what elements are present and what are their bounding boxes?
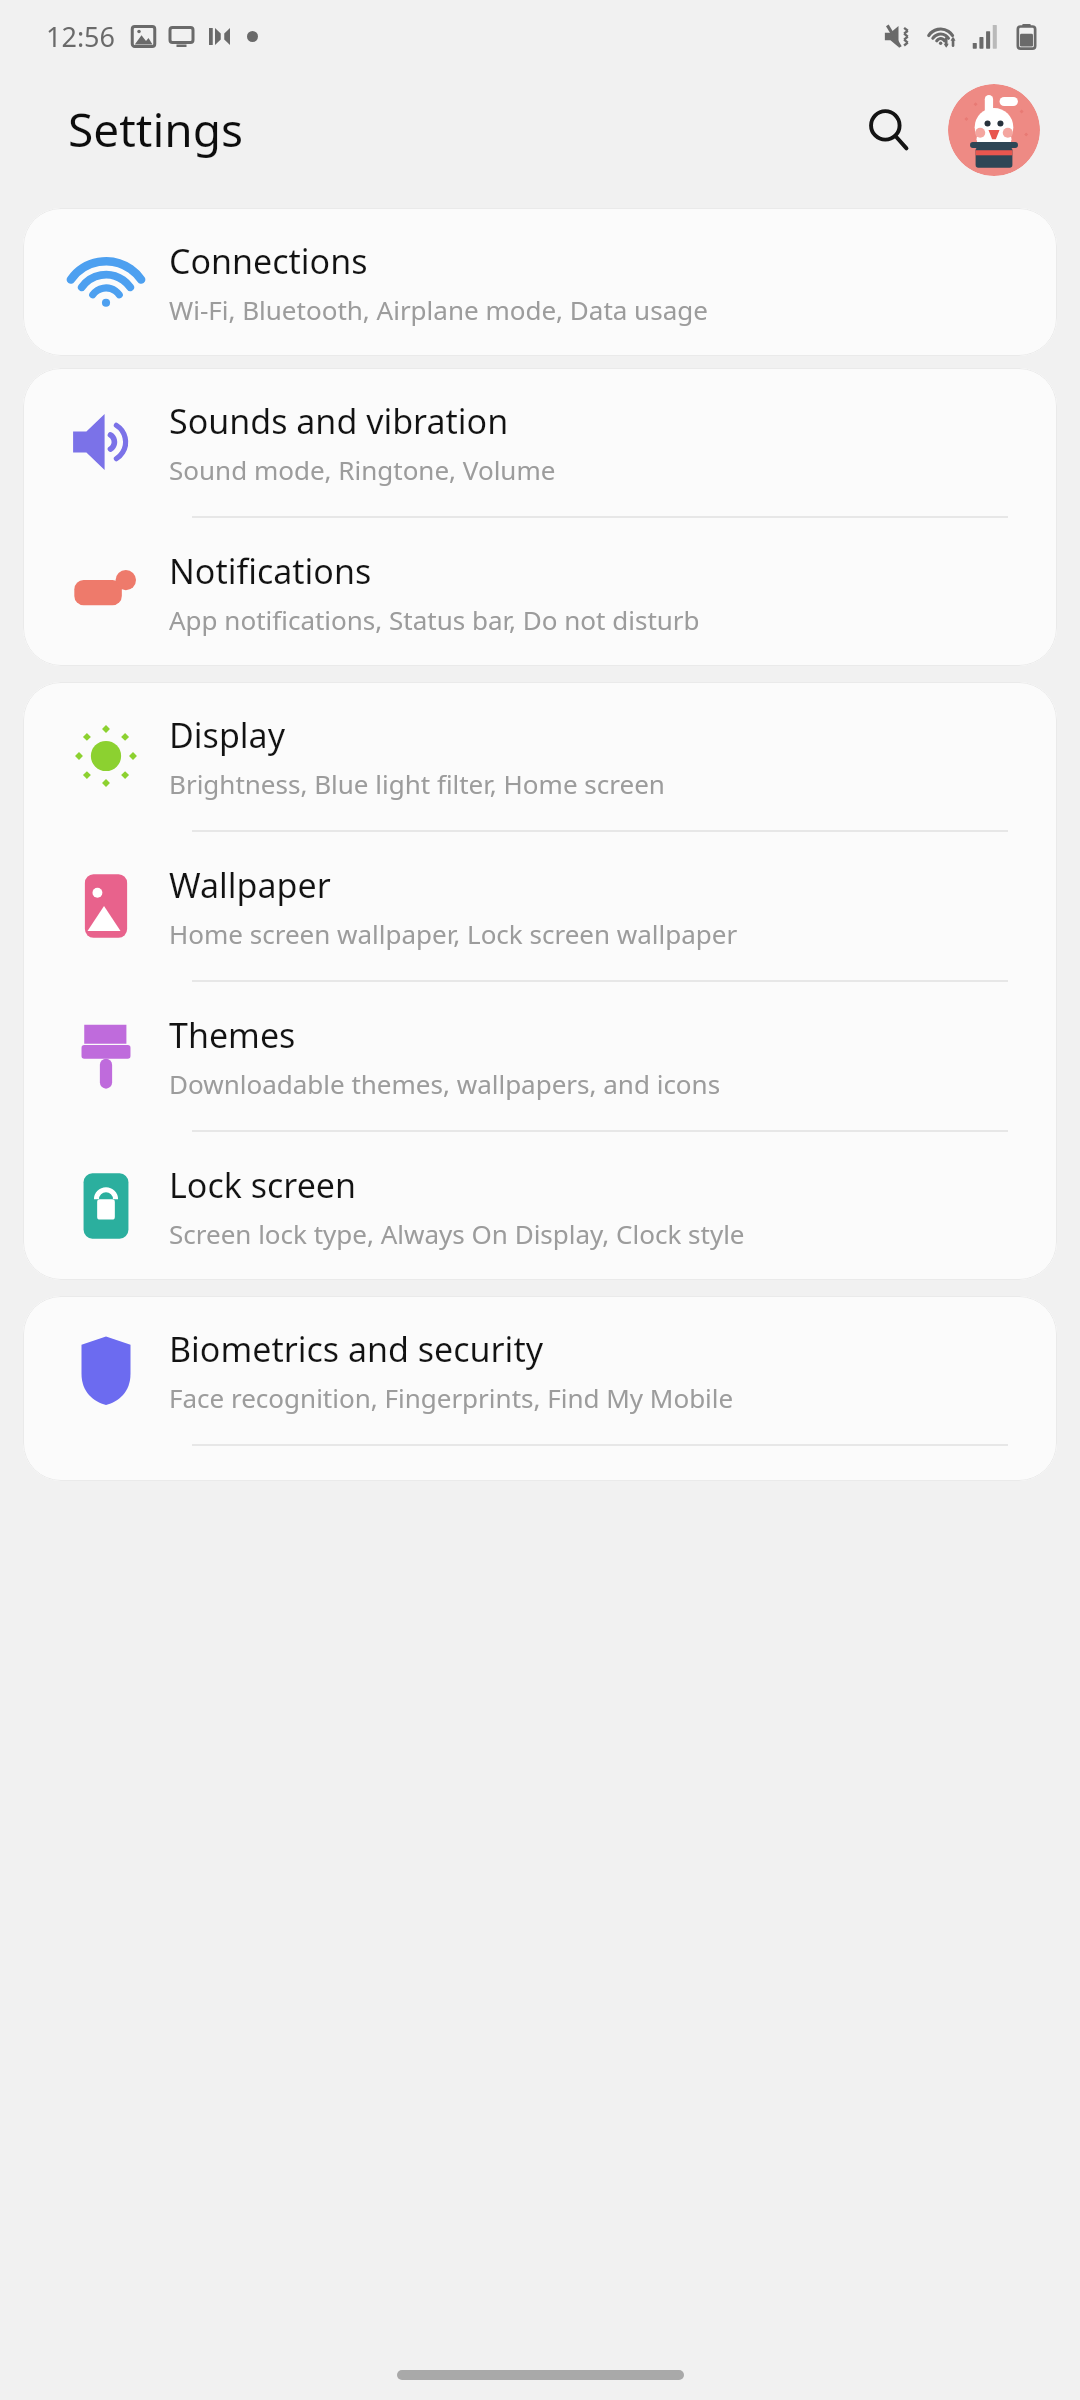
staticText: Biometrics and security (169, 1326, 543, 1372)
button[interactable]: Profile (948, 84, 1040, 176)
button[interactable]: Biometrics and security (23, 1296, 1057, 1444)
staticText: Screen lock type, Always On Display, Clo… (169, 1216, 745, 1251)
staticText: Home screen wallpaper, Lock screen wallp… (169, 916, 738, 951)
button[interactable]: Notifications (23, 518, 1057, 666)
button[interactable]: Lock screen (23, 1132, 1057, 1280)
staticText: Connections (169, 238, 368, 284)
staticText: Wi-Fi, Bluetooth, Airplane mode, Data us… (169, 292, 708, 327)
staticText: Brightness, Blue light filter, Home scre… (169, 766, 665, 801)
button[interactable]: Themes (23, 982, 1057, 1130)
staticText: Notifications (169, 548, 372, 594)
other: Battery (1013, 23, 1040, 50)
button[interactable]: Connections (23, 208, 1057, 356)
button[interactable]: Search (846, 87, 932, 173)
staticText: Sound mode, Ringtone, Volume (169, 452, 556, 487)
staticText: Sounds and vibration (169, 398, 509, 444)
staticText: Lock screen (169, 1162, 357, 1208)
staticText: Display (169, 712, 285, 758)
staticText: Wallpaper (169, 862, 331, 908)
button[interactable]: Display (23, 682, 1057, 830)
button[interactable]: Wallpaper (23, 832, 1057, 980)
staticText: 12:56 (46, 18, 116, 55)
button[interactable]: Sounds and vibration (23, 368, 1057, 516)
staticText: Settings (68, 98, 244, 161)
other: Wi-Fi (927, 21, 958, 52)
staticText: Themes (169, 1012, 296, 1058)
staticText: Face recognition, Fingerprints, Find My … (169, 1380, 734, 1415)
staticText: Downloadable themes, wallpapers, and ico… (169, 1066, 721, 1101)
other: Signal (971, 22, 1000, 51)
staticText: App notifications, Status bar, Do not di… (169, 602, 700, 637)
other: Mute (883, 21, 914, 52)
